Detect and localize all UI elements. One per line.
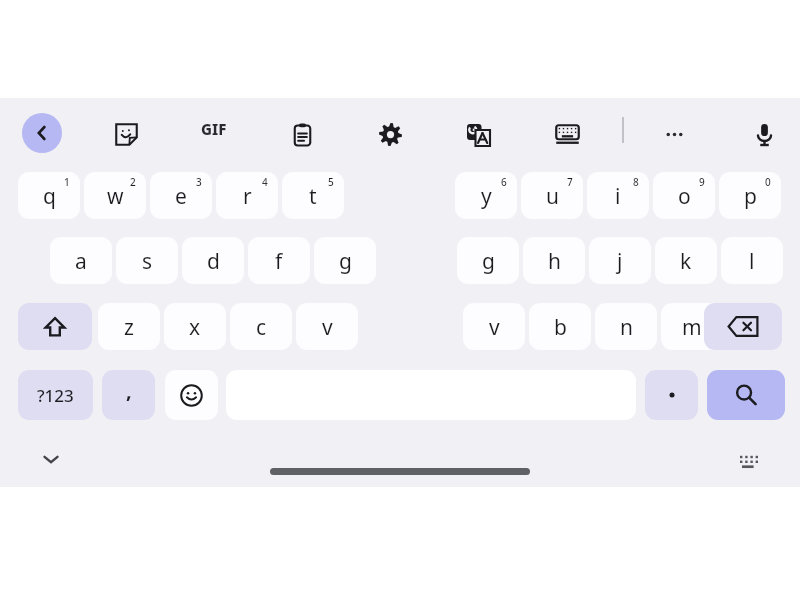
- button[interactable]: Backspace: [704, 303, 782, 350]
- staticText: e: [175, 182, 187, 211]
- button[interactable]: Translate: [459, 115, 497, 153]
- button[interactable]: n: [595, 303, 657, 350]
- staticText: GIF: [201, 119, 227, 139]
- staticText: 5: [328, 175, 334, 189]
- staticText: v: [322, 313, 333, 342]
- button[interactable]: Stickers: [107, 115, 145, 153]
- button[interactable]: u: [521, 172, 583, 219]
- button[interactable]: d: [182, 237, 244, 284]
- button[interactable]: Shift: [18, 303, 92, 350]
- button[interactable]: e: [150, 172, 212, 219]
- staticText: j: [617, 247, 623, 276]
- staticText: n: [620, 313, 633, 342]
- button[interactable]: Settings: [371, 115, 409, 153]
- button[interactable]: f: [248, 237, 310, 284]
- staticText: 0: [765, 175, 771, 189]
- button[interactable]: s: [116, 237, 178, 284]
- staticText: x: [189, 313, 201, 342]
- staticText: q: [43, 182, 56, 211]
- staticText: 7: [567, 175, 573, 189]
- button[interactable]: b: [529, 303, 591, 350]
- staticText: r: [243, 182, 252, 211]
- button[interactable]: Hide keyboard: [34, 442, 68, 476]
- staticText: i: [615, 182, 621, 211]
- button[interactable]: Back: [22, 113, 62, 153]
- button[interactable]: j: [589, 237, 651, 284]
- button[interactable]: h: [523, 237, 585, 284]
- button[interactable]: a: [50, 237, 112, 284]
- button[interactable]: c: [230, 303, 292, 350]
- staticText: z: [124, 313, 134, 342]
- staticText: 2: [130, 175, 136, 189]
- button[interactable]: z: [98, 303, 160, 350]
- button[interactable]: g: [314, 237, 376, 284]
- button[interactable]: i: [587, 172, 649, 219]
- button[interactable]: q: [18, 172, 80, 219]
- staticText: p: [744, 182, 757, 211]
- button[interactable]: Comma: [102, 370, 155, 420]
- button[interactable]: v: [296, 303, 358, 350]
- button[interactable]: y: [455, 172, 517, 219]
- staticText: 8: [633, 175, 639, 189]
- staticText: u: [546, 182, 559, 211]
- button[interactable]: Keyboard layout: [548, 115, 586, 153]
- button[interactable]: Change keyboard: [731, 444, 765, 478]
- staticText: m: [682, 313, 702, 342]
- staticText: l: [749, 247, 755, 276]
- staticText: h: [548, 247, 561, 276]
- staticText: w: [107, 182, 124, 211]
- staticText: g: [339, 247, 352, 276]
- button[interactable]: Search: [707, 370, 785, 420]
- staticText: v: [489, 313, 500, 342]
- staticText: 4: [262, 175, 268, 189]
- button[interactable]: l: [721, 237, 783, 284]
- button[interactable]: Voice input: [745, 115, 783, 153]
- button[interactable]: x: [164, 303, 226, 350]
- staticText: a: [75, 247, 87, 276]
- staticText: c: [256, 313, 267, 342]
- staticText: o: [678, 182, 691, 211]
- button[interactable]: More options: [655, 115, 693, 153]
- button[interactable]: r: [216, 172, 278, 219]
- staticText: y: [481, 182, 492, 211]
- staticText: 1: [64, 175, 70, 189]
- button[interactable]: t: [282, 172, 344, 219]
- button[interactable]: w: [84, 172, 146, 219]
- staticText: d: [207, 247, 220, 276]
- staticText: 6: [501, 175, 507, 189]
- staticText: f: [275, 247, 283, 276]
- button[interactable]: Clipboard: [283, 115, 321, 153]
- staticText: 9: [699, 175, 705, 189]
- button[interactable]: GIF: [190, 116, 238, 142]
- staticText: ?123: [37, 384, 74, 407]
- staticText: k: [680, 247, 692, 276]
- staticText: b: [554, 313, 567, 342]
- staticText: 3: [196, 175, 202, 189]
- staticText: g: [482, 247, 495, 276]
- button[interactable]: Period: [645, 370, 698, 420]
- staticText: ,: [126, 377, 132, 404]
- staticText: t: [309, 182, 317, 211]
- button[interactable]: Emoji: [165, 370, 218, 420]
- button[interactable]: o: [653, 172, 715, 219]
- button[interactable]: g: [457, 237, 519, 284]
- button[interactable]: m: [661, 303, 723, 350]
- button[interactable]: ?123: [18, 370, 93, 420]
- button[interactable]: p: [719, 172, 781, 219]
- button[interactable]: k: [655, 237, 717, 284]
- button[interactable]: v: [463, 303, 525, 350]
- staticText: s: [142, 247, 153, 276]
